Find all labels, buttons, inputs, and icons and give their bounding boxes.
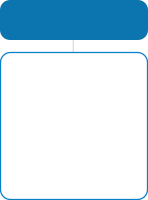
button[interactable]: Header [0, 0, 148, 40]
button[interactable]: Content card [0, 52, 147, 199]
